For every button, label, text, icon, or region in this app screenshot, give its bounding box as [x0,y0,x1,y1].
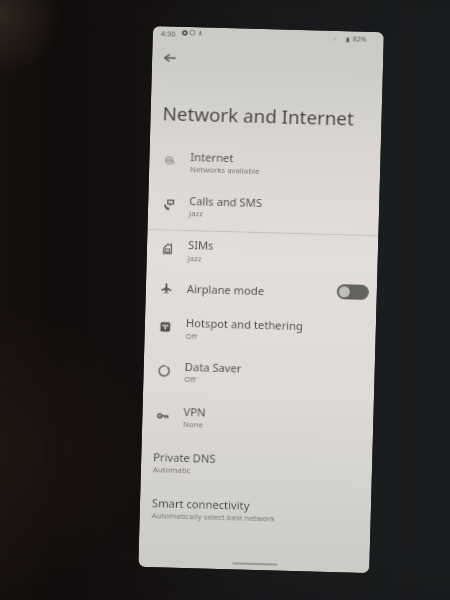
staticText: Airplane mode [187,281,265,298]
button[interactable] [144,306,376,352]
staticText: Internet [190,149,234,165]
staticText: 82% [353,34,367,45]
staticText: VPN [183,404,206,420]
staticText: SIMs [188,237,214,253]
staticText: Networks available [190,164,260,177]
button[interactable]: Back [158,46,181,70]
button[interactable] [149,140,381,186]
staticText: Network and Internet [162,100,355,131]
staticText: None [183,419,203,430]
button[interactable] [141,441,373,487]
button[interactable] [142,395,374,441]
staticText: Hotspot and tethering [186,315,303,333]
staticText: Private DNS [153,449,216,466]
button[interactable]: Airplane mode toggle [337,284,369,300]
staticText: Smart connectivity [152,495,250,513]
button[interactable] [148,184,380,230]
staticText: Automatically select best network [151,510,276,524]
staticText: Off [184,374,196,385]
staticText: Jazz [187,253,202,264]
button[interactable] [146,228,378,274]
button[interactable] [145,275,377,313]
staticText: Data Saver [184,359,242,375]
staticText: Automatic [153,464,191,476]
staticText: Off [185,331,198,342]
button[interactable] [143,350,375,396]
staticText: Calls and SMS [189,193,262,210]
staticText: 4:30 [161,28,176,39]
staticText: Jazz [189,208,203,219]
button[interactable] [139,487,371,533]
